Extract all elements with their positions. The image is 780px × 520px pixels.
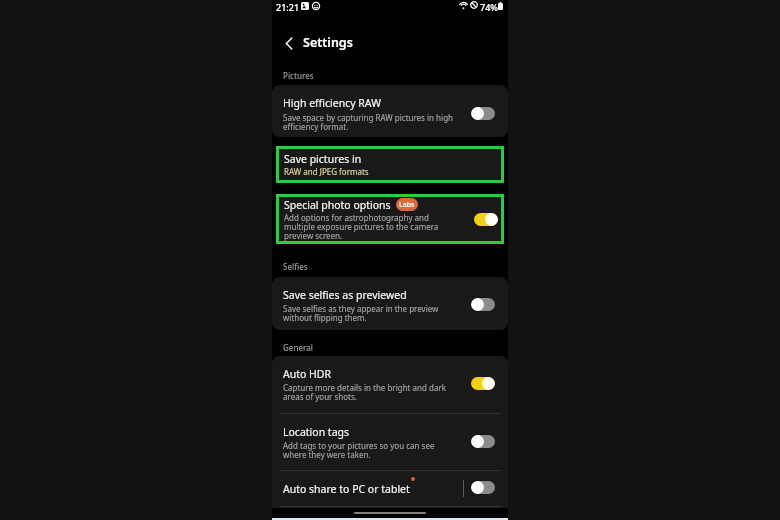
button[interactable]: Toggle on	[471, 377, 495, 390]
button[interactable]: Auto HDR	[272, 356, 508, 414]
staticText: Special photo options	[284, 198, 391, 212]
button[interactable]: Auto share to PC or tablet	[272, 471, 508, 508]
staticText: Save space by capturing RAW pictures in …	[283, 112, 455, 133]
button[interactable]: Back	[279, 33, 299, 53]
button[interactable]: Location tags	[272, 414, 508, 471]
staticText: Capture more details in the bright and d…	[283, 382, 455, 403]
staticText: Auto HDR	[283, 367, 332, 381]
button[interactable]: Toggle off	[471, 481, 495, 494]
button[interactable]: Save selfies as previewed	[272, 277, 508, 330]
staticText: Selfies	[283, 261, 308, 272]
button[interactable]: Toggle off	[471, 435, 495, 448]
staticText: High efficiency RAW	[283, 96, 381, 110]
staticText: Settings	[303, 34, 353, 51]
staticText: Labs	[399, 200, 415, 210]
button[interactable]: Toggle on	[474, 213, 498, 226]
button[interactable]: Special photo options	[279, 197, 501, 241]
staticText: Save selfies as previewed	[283, 288, 407, 302]
staticText: Add tags to your pictures so you can see…	[283, 440, 443, 461]
button[interactable]: Toggle off	[471, 298, 495, 311]
button[interactable]: Home	[354, 512, 426, 514]
staticText: Add options for astrophotography and mul…	[284, 212, 444, 242]
staticText: Save pictures in	[284, 152, 362, 166]
staticText: Auto share to PC or tablet	[283, 482, 410, 496]
staticText: General	[283, 342, 313, 353]
staticText: Location tags	[283, 425, 350, 439]
staticText: RAW and JPEG formats	[284, 166, 369, 177]
staticText: 21:21	[276, 1, 300, 13]
button[interactable]: High efficiency RAW	[272, 85, 508, 137]
staticText: Pictures	[283, 70, 314, 81]
staticText: Save selfies as they appear in the previ…	[283, 303, 447, 324]
button[interactable]: Save pictures in	[279, 149, 501, 180]
button[interactable]: Toggle off	[471, 107, 495, 120]
staticText: 74%	[480, 1, 498, 13]
